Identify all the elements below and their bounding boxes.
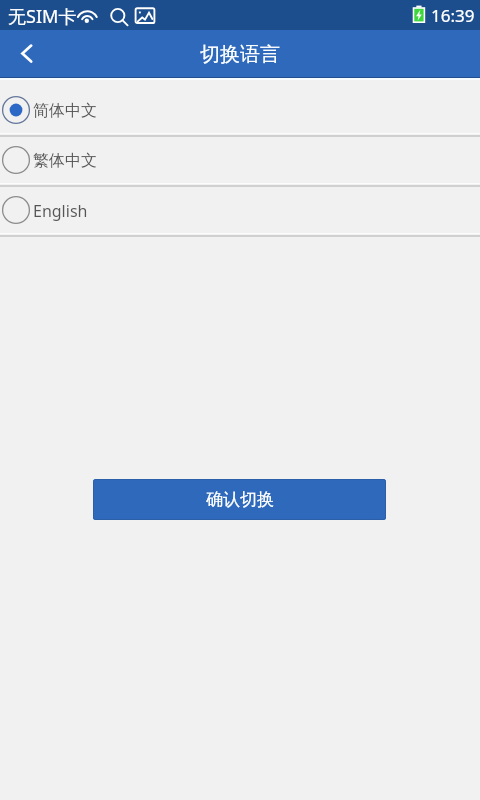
button[interactable]: English — [0, 185, 480, 235]
button[interactable]: 繁体中文 — [0, 135, 480, 185]
staticText: 确认切换 — [206, 489, 274, 510]
button[interactable]: 确认切换 — [93, 479, 386, 520]
staticText: 繁体中文 — [33, 151, 97, 171]
staticText: 切换语言 — [200, 42, 280, 67]
staticText: 无SIM卡 — [8, 4, 77, 29]
staticText: 16:39 — [431, 4, 475, 27]
button[interactable]: 简体中文 — [0, 85, 480, 135]
staticText: English — [33, 200, 88, 222]
button[interactable]: Back — [0, 30, 47, 77]
staticText: 简体中文 — [33, 101, 97, 121]
